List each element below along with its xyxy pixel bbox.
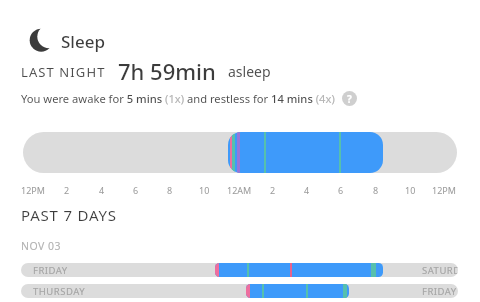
staticText: 8 bbox=[373, 184, 379, 196]
staticText: ? bbox=[347, 92, 352, 106]
staticText: 10 bbox=[199, 184, 210, 196]
staticText: Sleep bbox=[61, 30, 105, 53]
staticText: 8 bbox=[167, 184, 173, 196]
staticText: 2 bbox=[270, 184, 276, 196]
staticText: 12PM bbox=[21, 184, 45, 196]
staticText: THURSDAY bbox=[33, 285, 86, 298]
button[interactable]: FRIDAY bbox=[21, 263, 458, 277]
staticText: FRIDAY bbox=[33, 264, 68, 277]
staticText: PAST 7 DAYS bbox=[21, 205, 117, 225]
staticText: 7h 59min bbox=[118, 56, 216, 86]
staticText: 12PM bbox=[432, 184, 456, 196]
button[interactable]: ? bbox=[342, 91, 357, 106]
staticText: NOV 03 bbox=[21, 239, 62, 253]
staticText: 2 bbox=[64, 184, 70, 196]
staticText: 4 bbox=[99, 184, 105, 196]
staticText: 6 bbox=[133, 184, 139, 196]
staticText: 4 bbox=[304, 184, 310, 196]
staticText: SATURDAY bbox=[422, 264, 458, 277]
button[interactable]: THURSDAY bbox=[21, 284, 458, 298]
staticText: FRIDAY bbox=[422, 285, 457, 298]
staticText: 12AM bbox=[227, 184, 252, 196]
staticText: 10 bbox=[405, 184, 416, 196]
staticText: asleep bbox=[228, 62, 271, 81]
staticText: 6 bbox=[338, 184, 344, 196]
staticText: LAST NIGHT bbox=[21, 63, 106, 81]
staticText: You were awake for 5 mins (1x) and restl… bbox=[21, 91, 335, 106]
